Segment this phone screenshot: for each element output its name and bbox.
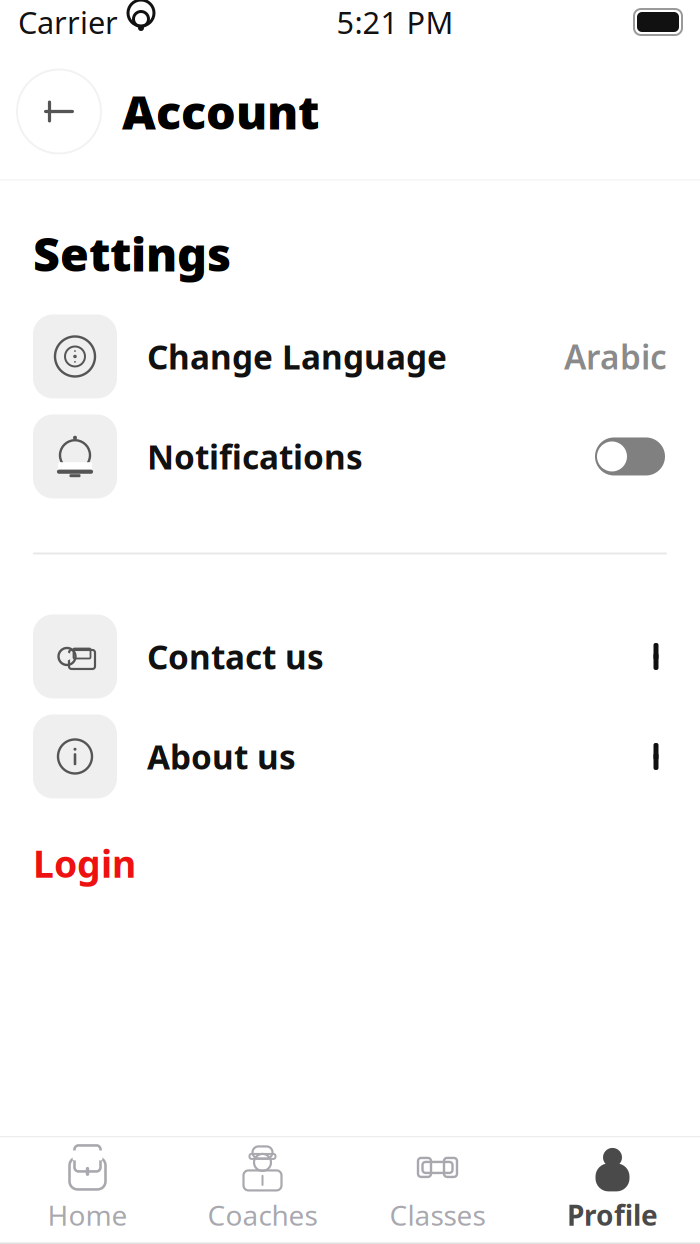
staticText: Profile xyxy=(567,1196,658,1234)
staticText: Notifications xyxy=(147,434,363,479)
staticText: Change Language xyxy=(147,334,447,379)
staticText: 5:21 PM xyxy=(336,2,453,42)
staticText: Home xyxy=(47,1196,127,1234)
button[interactable]: Change Language xyxy=(0,306,700,406)
staticText: Coaches xyxy=(207,1196,317,1234)
button[interactable]: Profile xyxy=(525,1134,700,1244)
button[interactable]: Notifications toggle xyxy=(593,435,667,477)
button[interactable]: Classes xyxy=(350,1134,525,1244)
staticText: Contact us xyxy=(147,634,324,679)
button[interactable]: Coaches xyxy=(175,1134,350,1244)
staticText: Arabic xyxy=(564,334,667,379)
button[interactable]: Notifications xyxy=(0,406,700,506)
button[interactable]: About us xyxy=(0,706,700,806)
staticText: Classes xyxy=(389,1196,485,1234)
staticText: Carrier xyxy=(18,2,118,42)
button[interactable]: Contact us xyxy=(0,606,700,706)
button[interactable]: Home xyxy=(0,1134,175,1244)
staticText: Account xyxy=(122,80,319,142)
staticText: Settings xyxy=(33,222,231,284)
staticText: Login xyxy=(33,838,136,888)
button[interactable]: Back xyxy=(14,66,104,156)
button[interactable]: Login xyxy=(0,806,700,908)
staticText: About us xyxy=(147,734,296,779)
